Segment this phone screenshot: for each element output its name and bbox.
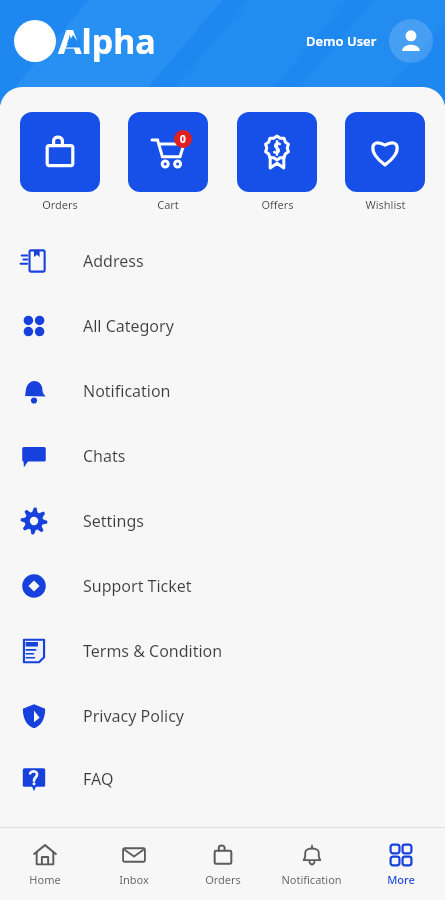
button[interactable]: Address <box>0 228 445 293</box>
staticText: Inbox <box>119 872 149 887</box>
button[interactable]: Terms & Condition <box>0 618 445 683</box>
staticText: Demo User <box>306 32 377 50</box>
staticText: Terms & Condition <box>83 640 223 662</box>
staticText: 0 <box>180 132 186 146</box>
button[interactable]: All Category <box>0 293 445 358</box>
button[interactable]: Home <box>0 828 89 900</box>
button[interactable]: Wishlist <box>345 112 425 212</box>
other: Profile <box>389 19 433 63</box>
staticText: Privacy Policy <box>83 705 184 727</box>
staticText: Orders <box>42 197 78 212</box>
button[interactable]: Privacy Policy <box>0 683 445 748</box>
staticText: Chats <box>83 445 126 467</box>
staticText: Notification <box>83 380 171 402</box>
button[interactable]: Orders <box>20 112 100 212</box>
staticText: Offers <box>261 197 294 212</box>
button[interactable]: Notification <box>0 358 445 423</box>
button[interactable]: Notification <box>267 828 356 900</box>
button[interactable]: Chats <box>0 423 445 488</box>
button[interactable]: Settings <box>0 488 445 553</box>
staticText: Address <box>83 250 144 272</box>
button[interactable]: 0 <box>128 112 208 212</box>
button[interactable]: More <box>356 828 445 900</box>
staticText: More <box>387 872 415 887</box>
staticText: Cart <box>157 197 179 212</box>
staticText: Notification <box>281 872 342 887</box>
button[interactable]: FAQ <box>0 748 445 809</box>
button[interactable]: Offers <box>237 112 317 212</box>
staticText: Support Ticket <box>83 575 192 597</box>
button[interactable]: Demo User <box>306 19 433 63</box>
button[interactable]: Inbox <box>89 828 178 900</box>
staticText: Alpha <box>58 18 156 64</box>
staticText: Orders <box>205 872 241 887</box>
button[interactable]: Support Ticket <box>0 553 445 618</box>
button[interactable]: Orders <box>178 828 267 900</box>
staticText: Settings <box>83 510 144 532</box>
staticText: Wishlist <box>365 197 406 212</box>
staticText: All Category <box>83 315 174 337</box>
staticText: FAQ <box>83 768 114 790</box>
staticText: Home <box>29 872 61 887</box>
